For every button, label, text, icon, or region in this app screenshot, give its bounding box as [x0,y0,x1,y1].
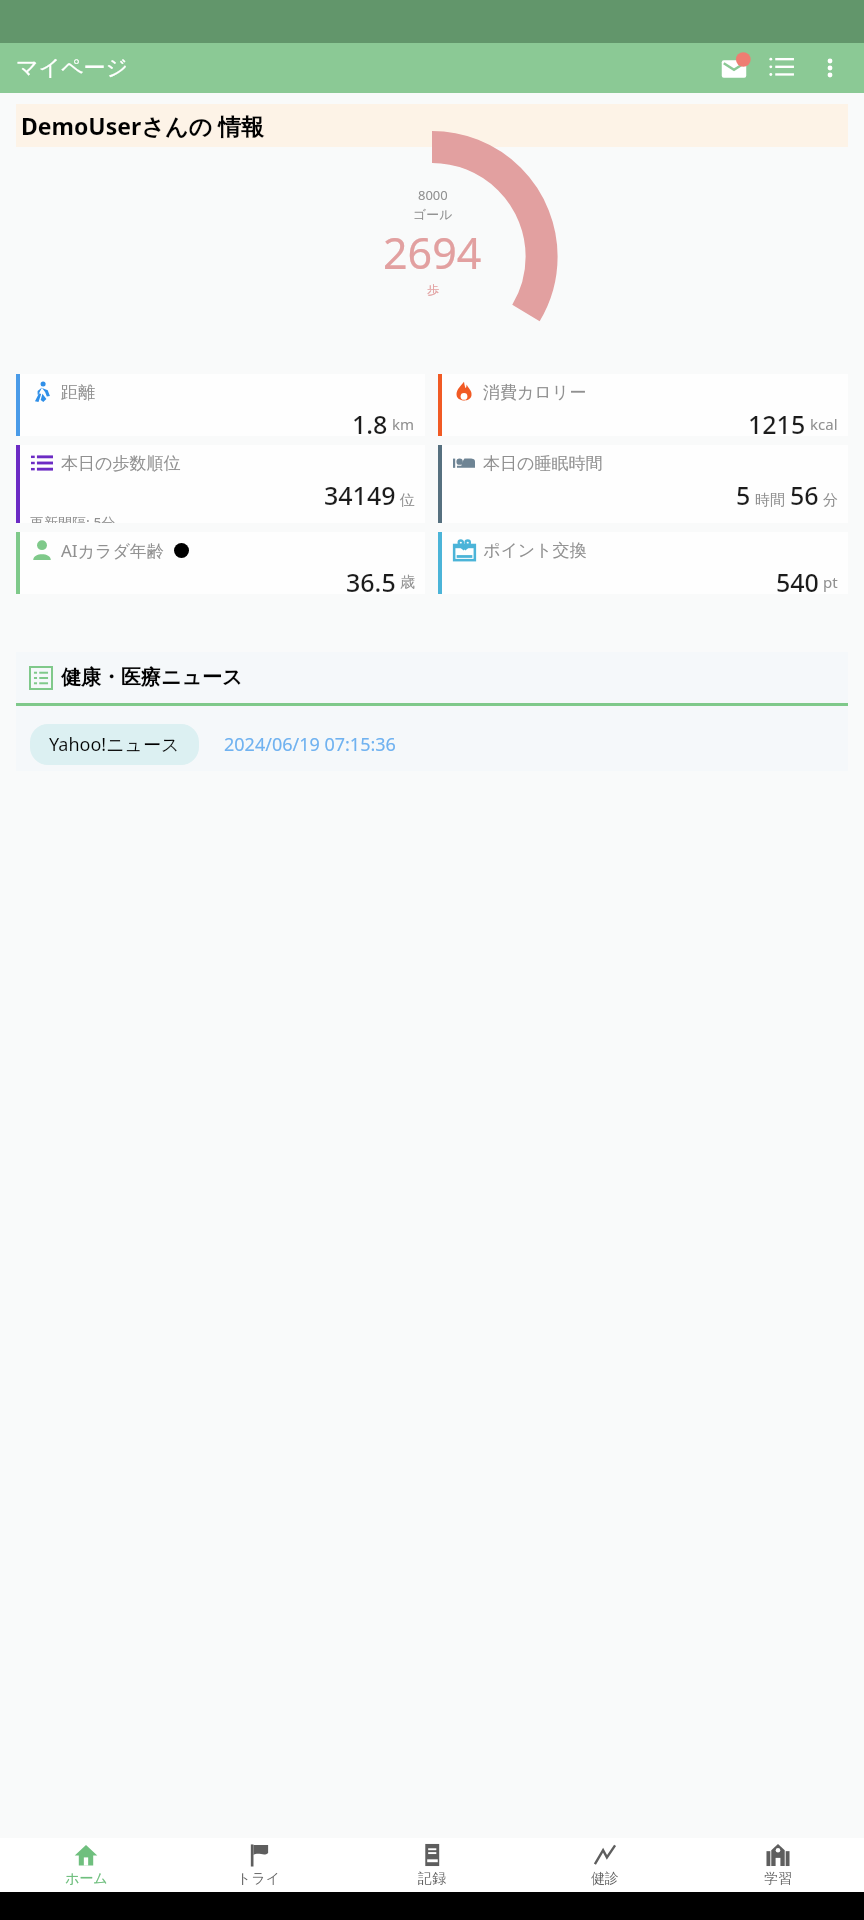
staticText: 健康・医療ニュース [61,665,243,690]
staticText: pt [823,572,838,592]
staticText: 距離 [61,382,95,403]
staticText: 8000 [418,186,448,204]
staticText: 更新間隔: 5分 [30,513,116,523]
staticText: AIカラダ年齢 [61,539,164,562]
button[interactable]: Messages [710,44,758,92]
button[interactable]: ホーム [0,1838,172,1892]
staticText: 位 [400,491,415,510]
staticText: マイページ [16,54,129,82]
staticText: 分 [823,491,838,510]
staticText: km [392,414,415,434]
staticText: DemoUserさんの [21,110,212,141]
button[interactable]: More options [806,44,854,92]
button[interactable]: 消費カロリー [438,374,848,436]
button[interactable]: トライ [172,1838,345,1892]
button[interactable]: 本日の睡眠時間 [438,445,848,523]
staticText: 56 [790,478,819,512]
button[interactable]: AIカラダ年齢 [16,532,425,594]
staticText: 歳 [400,573,415,592]
button[interactable]: 健康・医療ニュース [16,652,848,771]
staticText: ポイント交換 [483,540,587,561]
staticText: 540 [776,565,819,594]
button[interactable]: 本日の歩数順位 [16,445,425,523]
staticText: 34149 [324,478,396,512]
staticText: 記録 [418,1870,446,1888]
button[interactable]: 健診 [518,1838,691,1892]
button[interactable]: List [758,44,806,92]
staticText: 36.5 [346,565,396,594]
staticText: ホーム [65,1870,108,1888]
staticText: 本日の睡眠時間 [483,453,603,474]
button[interactable]: 学習 [691,1838,864,1892]
staticText: 2024/06/19 07:15:36 [224,732,396,757]
staticText: 1215 [748,407,806,436]
staticText: 2694 [383,223,482,282]
staticText: 消費カロリー [483,382,587,403]
staticText: 学習 [764,1870,792,1888]
staticText: 歩 [427,282,439,297]
button[interactable]: 距離 [16,374,425,436]
staticText: Yahoo!ニュース [49,732,180,757]
staticText: 5 [736,478,751,512]
staticText: 時間 [755,491,785,510]
staticText: 健診 [591,1870,619,1888]
button[interactable]: ポイント交換 [438,532,848,594]
staticText: kcal [810,414,838,434]
staticText: 情報 [212,110,264,141]
button[interactable]: 記録 [345,1838,518,1892]
staticText: トライ [237,1870,280,1888]
staticText: 本日の歩数順位 [61,453,181,474]
staticText: 1.8 [352,407,388,436]
staticText: ゴール [413,206,453,222]
